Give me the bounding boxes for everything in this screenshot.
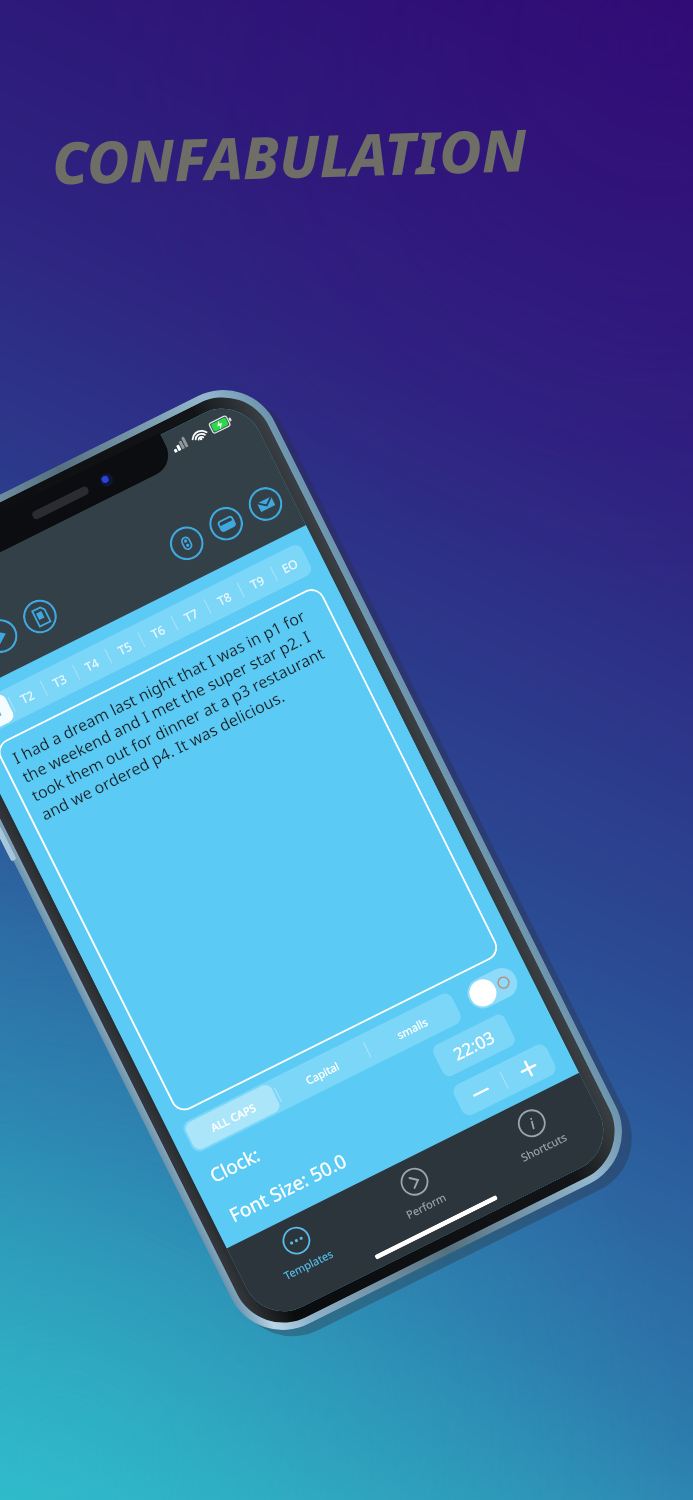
button[interactable]: T5	[100, 625, 149, 671]
staticText: ALL CAPS	[208, 1100, 258, 1135]
staticText: i	[525, 1113, 539, 1133]
button[interactable]: T4	[68, 641, 115, 688]
staticText: Clock:	[205, 1142, 264, 1189]
staticText: T8	[214, 588, 234, 609]
staticText: Perform	[403, 1189, 448, 1222]
button[interactable]: Capital	[270, 1035, 374, 1110]
staticText: T1	[0, 702, 5, 723]
button[interactable]: 22:03	[430, 1012, 517, 1079]
staticText: CONFABULATION	[51, 109, 528, 202]
staticText: T3	[50, 670, 69, 691]
button[interactable]: I had a dream last night that I was in p…	[0, 584, 502, 1115]
button[interactable]: T6	[133, 608, 182, 655]
button[interactable]: T2	[4, 673, 51, 720]
staticText: T6	[148, 621, 168, 642]
staticText: Templates	[281, 1246, 336, 1283]
staticText: T5	[115, 638, 135, 658]
staticText: Font Size: 50.0	[225, 1148, 351, 1228]
button[interactable]: smalls	[359, 990, 464, 1065]
button[interactable]: Decrease font size	[450, 1065, 511, 1118]
button[interactable]: Perform	[345, 1131, 500, 1267]
staticText: T2	[17, 686, 37, 707]
button[interactable]: T1	[0, 692, 16, 733]
button[interactable]: Play	[0, 613, 23, 659]
button[interactable]: EO	[266, 542, 314, 589]
staticText: EO	[279, 555, 301, 576]
staticText: Capital	[303, 1058, 342, 1088]
button[interactable]: Notes	[17, 594, 63, 639]
staticText: Shortcuts	[518, 1129, 569, 1165]
button[interactable]: ALL CAPS	[183, 1082, 282, 1152]
staticText: T4	[82, 654, 102, 675]
button[interactable]: T9	[233, 559, 281, 605]
button[interactable]: i	[462, 1073, 618, 1208]
button[interactable]: Templates	[227, 1190, 383, 1326]
staticText: T7	[181, 605, 201, 625]
staticText: 22:03	[449, 1025, 499, 1065]
button[interactable]: Save	[203, 501, 249, 546]
button[interactable]: Lock	[164, 520, 209, 566]
staticText: I had a dream last night that I was in p…	[9, 598, 349, 825]
button[interactable]: Increase font size	[497, 1041, 559, 1095]
button[interactable]: T3	[36, 657, 83, 704]
staticText: T9	[247, 572, 267, 592]
button[interactable]: T7	[166, 592, 215, 638]
button[interactable]: Send	[243, 481, 288, 527]
button[interactable]: Toggle	[462, 963, 523, 1014]
button[interactable]: T8	[200, 575, 248, 622]
staticText: smalls	[394, 1014, 430, 1042]
